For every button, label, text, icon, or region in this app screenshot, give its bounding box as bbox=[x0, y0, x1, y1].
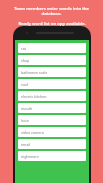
staticText: electric kitchen bbox=[21, 94, 47, 99]
button[interactable]: roof bbox=[18, 79, 86, 89]
button[interactable]: hour bbox=[18, 115, 86, 125]
staticText: shop bbox=[21, 58, 30, 63]
button[interactable]: mouth bbox=[18, 103, 86, 113]
button[interactable]: video camera bbox=[18, 127, 86, 137]
staticText: nightmare bbox=[21, 154, 39, 159]
button[interactable]: electric kitchen bbox=[18, 91, 86, 101]
staticText: cat bbox=[21, 46, 27, 51]
button[interactable]: cat bbox=[18, 43, 86, 53]
button[interactable]: nightmare bbox=[18, 151, 86, 161]
staticText: video camera bbox=[21, 130, 44, 135]
button[interactable]: shop bbox=[18, 55, 86, 65]
staticText: roof bbox=[21, 82, 28, 87]
staticText: Ready word list on app available. bbox=[18, 20, 86, 26]
button[interactable]: bathroom scale bbox=[18, 67, 86, 77]
staticText: mouth bbox=[21, 106, 33, 111]
staticText: email bbox=[21, 142, 31, 147]
button[interactable]: email bbox=[18, 139, 86, 149]
staticText: Team members enter words into the databa… bbox=[4, 5, 99, 16]
staticText: bathroom scale bbox=[21, 70, 48, 75]
staticText: hour bbox=[21, 118, 30, 123]
